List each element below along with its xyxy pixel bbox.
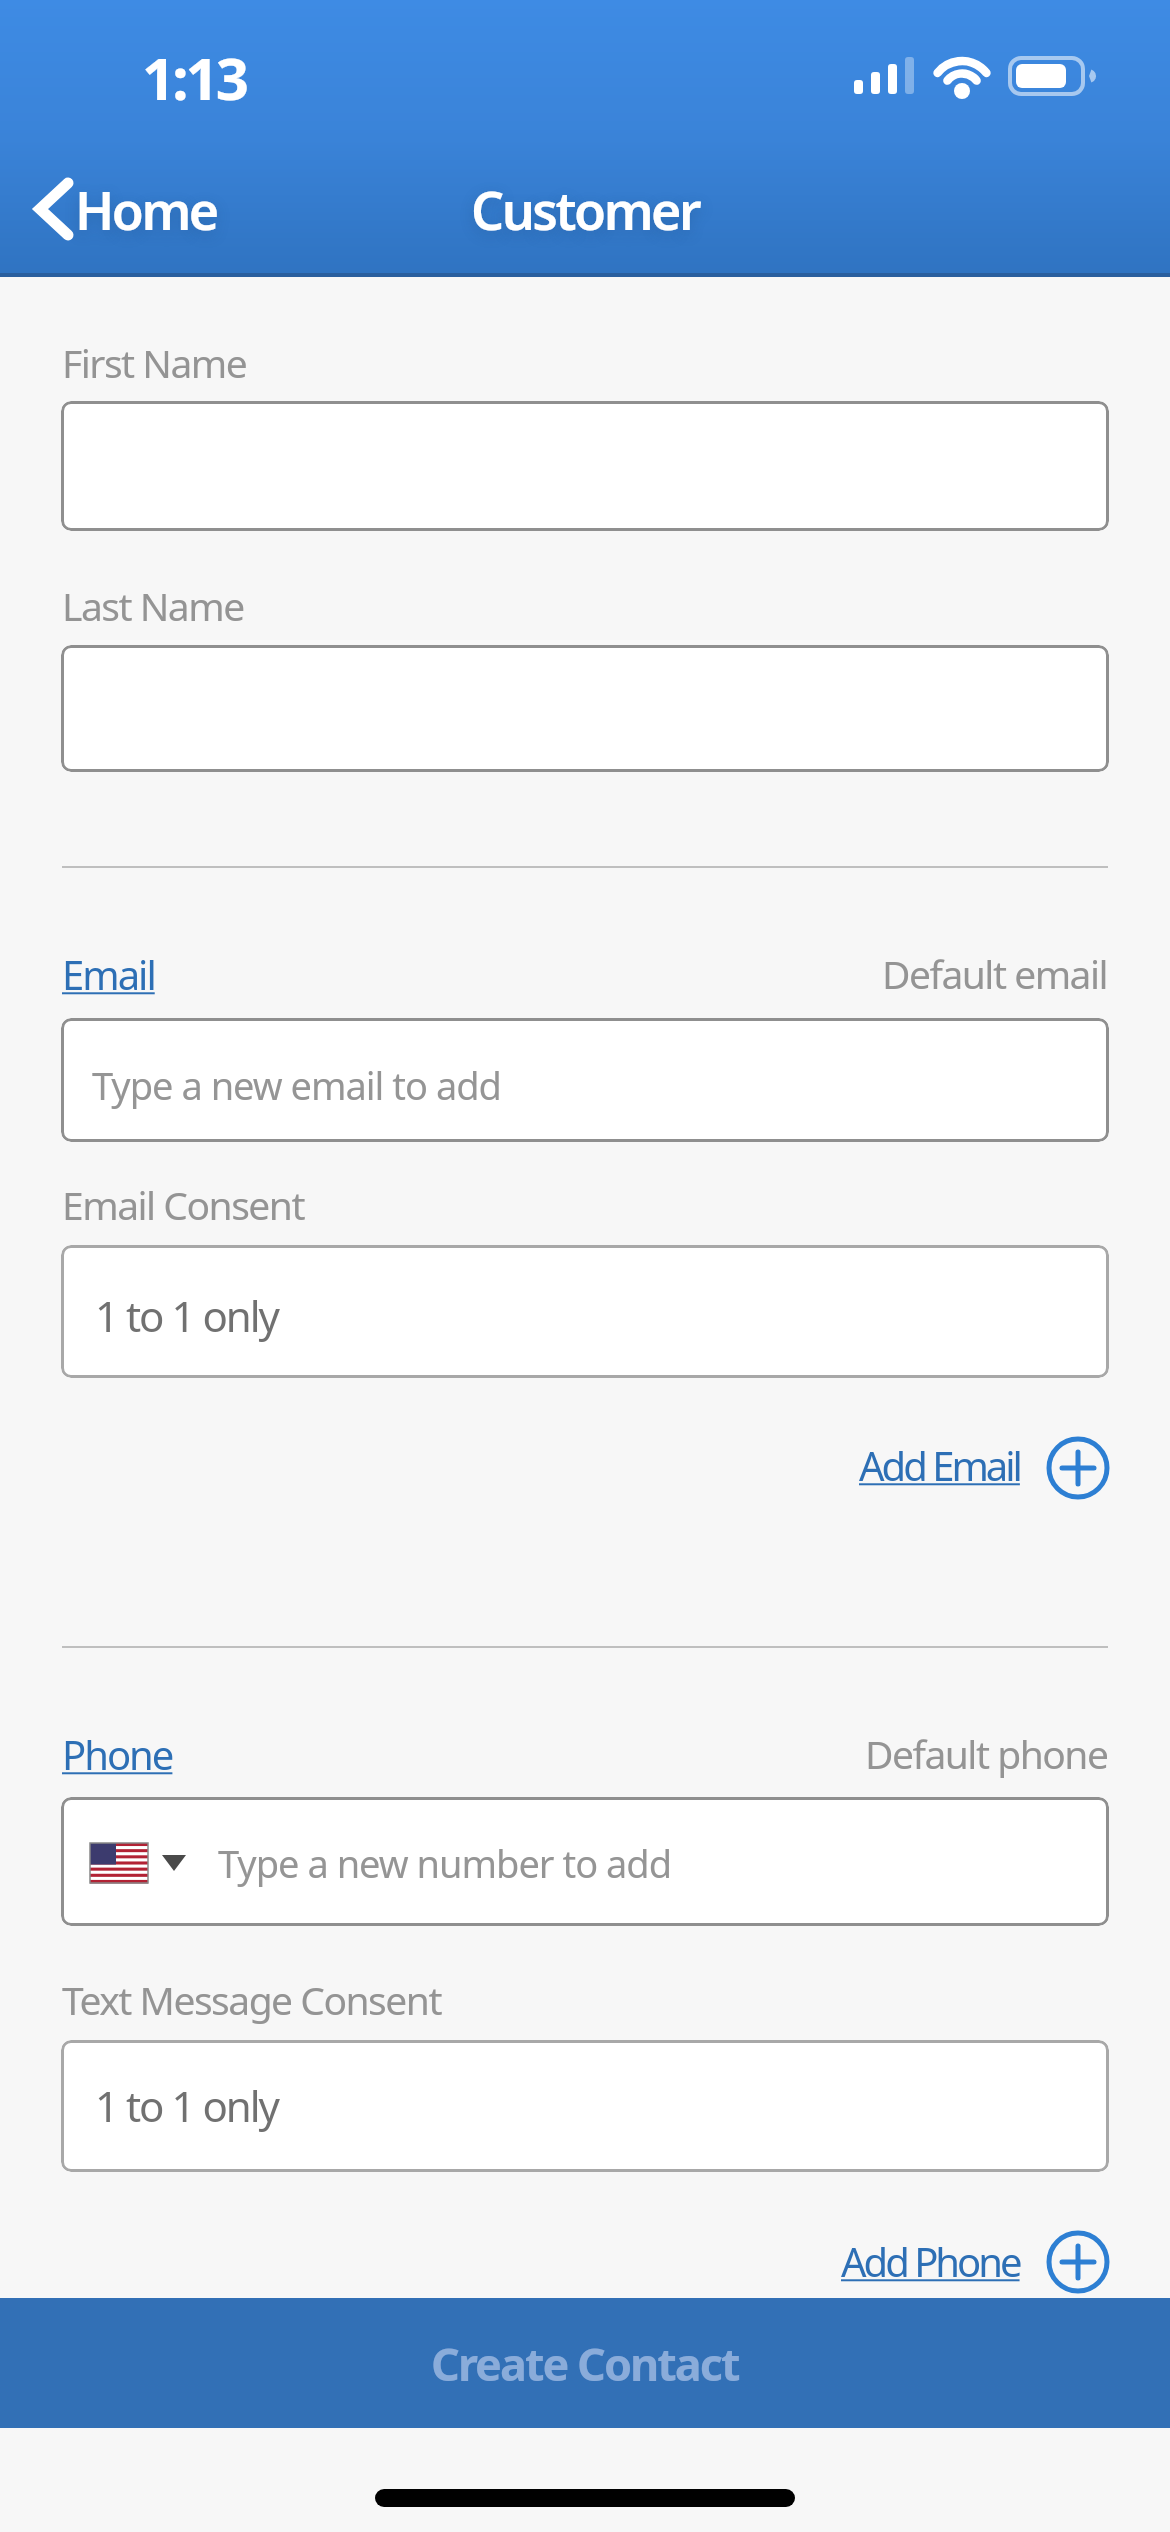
button[interactable] xyxy=(61,645,1109,772)
staticText: 1 to 1 only xyxy=(95,1287,279,1344)
button[interactable] xyxy=(61,1797,1109,1926)
staticText: 1:13 xyxy=(142,38,246,117)
staticText: Type a new email to add xyxy=(92,1059,501,1111)
staticText: Type a new number to add xyxy=(218,1837,672,1889)
button[interactable] xyxy=(61,2040,1109,2172)
button[interactable]: Add Email xyxy=(0,1438,1020,1492)
button[interactable]: Phone xyxy=(62,1727,173,1781)
button[interactable]: Add Phone xyxy=(0,2234,1020,2288)
button[interactable] xyxy=(61,1245,1109,1378)
button[interactable] xyxy=(1044,1434,1112,1502)
button[interactable] xyxy=(61,1018,1109,1142)
staticText: Last Name xyxy=(62,579,244,632)
staticText: 1 to 1 only xyxy=(95,2077,279,2134)
button[interactable]: Home xyxy=(18,174,288,250)
staticText: First Name xyxy=(62,336,247,389)
button[interactable]: Create Contact xyxy=(0,2298,1170,2428)
staticText: Home xyxy=(75,174,217,245)
staticText: Create Contact xyxy=(431,2333,739,2394)
staticText: Customer xyxy=(471,174,700,245)
button[interactable]: Email xyxy=(62,947,155,1001)
staticText: Default phone xyxy=(865,1727,1108,1780)
staticText: Default email xyxy=(882,947,1108,1000)
staticText: Email Consent xyxy=(62,1178,304,1231)
button[interactable] xyxy=(1044,2228,1112,2296)
staticText: Add Email xyxy=(859,1438,1020,1492)
button[interactable] xyxy=(61,401,1109,531)
staticText: Text Message Consent xyxy=(62,1973,441,2026)
staticText: Add Phone xyxy=(841,2234,1020,2288)
